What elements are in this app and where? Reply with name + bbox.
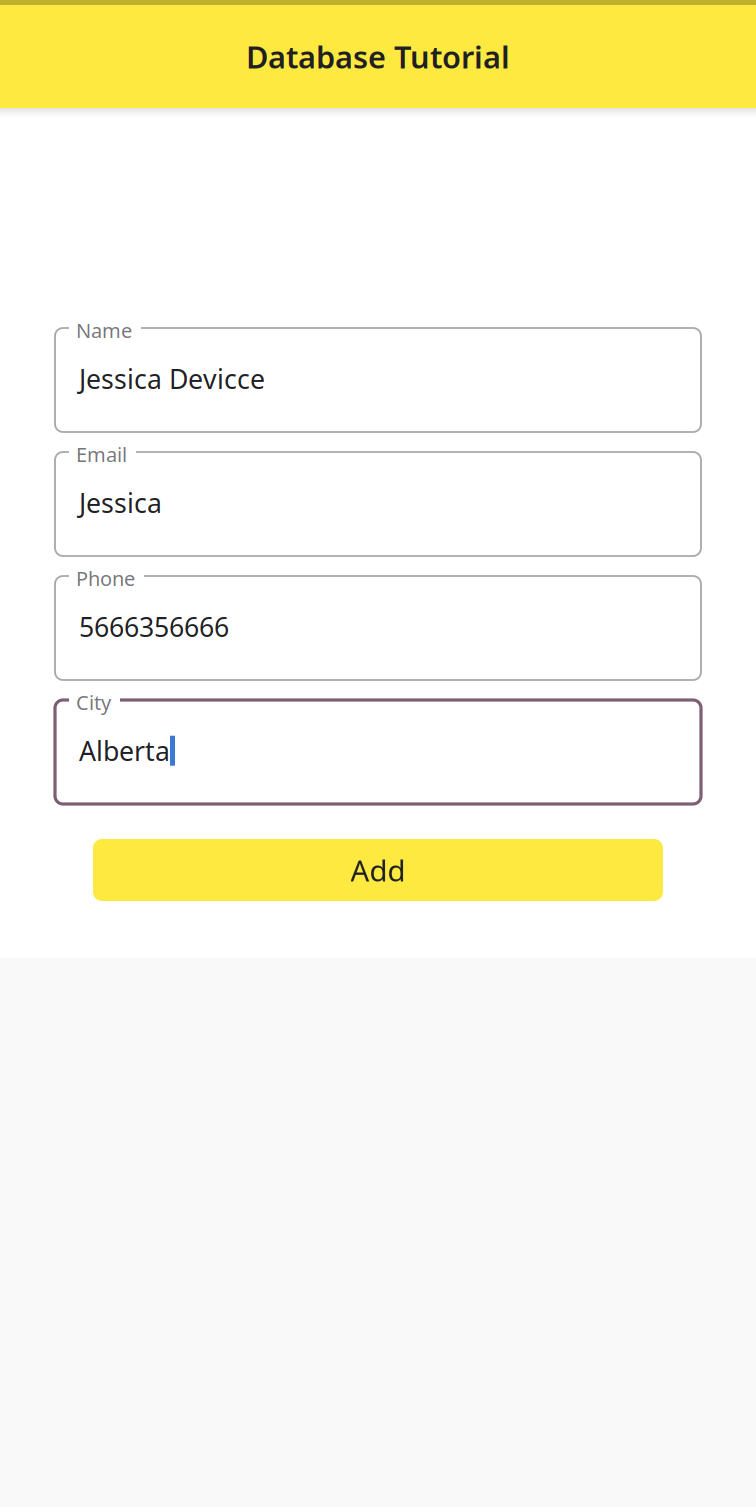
staticText: Add [350, 850, 405, 889]
button[interactable]: Add [93, 839, 663, 901]
button[interactable]: Jessica Devicce [55, 328, 701, 432]
staticText: Phone [76, 565, 135, 592]
staticText: Name [76, 317, 132, 344]
button[interactable]: 5666356666 [55, 576, 701, 680]
staticText: City [76, 689, 111, 716]
staticText: Jessica Devicce [79, 361, 265, 396]
staticText: Database Tutorial [246, 36, 510, 77]
staticText: 5666356666 [79, 609, 229, 644]
button[interactable]: Jessica [55, 452, 701, 556]
staticText: Alberta [79, 733, 170, 768]
staticText: Email [76, 441, 127, 468]
button[interactable]: Alberta [55, 700, 701, 804]
staticText: Jessica [79, 485, 162, 520]
